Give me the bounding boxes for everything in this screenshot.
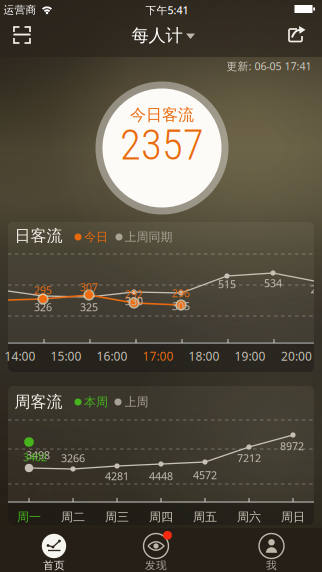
- staticText: 3498: [26, 448, 50, 462]
- staticText: 今日客流: [130, 105, 194, 125]
- staticText: 上周同期: [124, 230, 172, 244]
- staticText: 周客流: [14, 392, 62, 412]
- staticText: 17:00: [142, 348, 173, 364]
- staticText: 周五: [193, 510, 217, 524]
- staticText: 4281: [105, 469, 129, 483]
- staticText: 周一: [17, 510, 41, 524]
- staticText: 15:00: [50, 348, 81, 364]
- staticText: 周日: [281, 510, 305, 524]
- staticText: 4572: [193, 468, 217, 482]
- staticText: 307: [80, 280, 98, 294]
- staticText: 7212: [237, 451, 261, 465]
- staticText: 14:00: [4, 348, 35, 364]
- staticText: 20:00: [281, 348, 312, 364]
- staticText: 上周: [124, 395, 148, 409]
- staticText: 今日: [84, 230, 108, 244]
- button[interactable]: Share: [278, 21, 322, 51]
- staticText: 周四: [149, 510, 173, 524]
- staticText: 日客流: [14, 226, 62, 246]
- staticText: 更新: 06-05 17:41: [226, 59, 311, 73]
- staticText: 325: [80, 300, 98, 314]
- button[interactable]: Scan: [0, 20, 44, 50]
- staticText: 534: [264, 276, 282, 290]
- staticText: 下午5:41: [145, 3, 188, 17]
- button[interactable]: 发现: [107, 528, 214, 572]
- staticText: 3402: [23, 450, 47, 464]
- staticText: 运营商: [3, 3, 36, 16]
- staticText: 515: [218, 277, 236, 291]
- button[interactable]: 我: [214, 528, 321, 572]
- staticText: 292: [125, 287, 143, 301]
- staticText: 326: [34, 300, 52, 314]
- staticText: 8972: [280, 439, 304, 453]
- staticText: 首页: [43, 559, 65, 572]
- staticText: 发现: [145, 559, 167, 572]
- staticText: 253: [310, 282, 322, 296]
- staticText: 4448: [149, 469, 173, 483]
- staticText: 18:00: [188, 348, 219, 364]
- staticText: 周二: [61, 510, 85, 524]
- staticText: 周六: [237, 510, 261, 524]
- staticText: 16:00: [96, 348, 127, 364]
- staticText: 330: [125, 294, 143, 308]
- staticText: 2357: [120, 120, 204, 170]
- staticText: 我: [266, 559, 277, 572]
- staticText: 3266: [61, 451, 85, 465]
- staticText: 305: [172, 299, 190, 313]
- staticText: 19:00: [234, 348, 265, 364]
- button[interactable]: 首页: [0, 528, 107, 572]
- staticText: 296: [172, 286, 190, 300]
- staticText: 每人计: [131, 25, 182, 46]
- staticText: 本周: [84, 395, 108, 409]
- staticText: 295: [34, 283, 52, 297]
- button[interactable]: 每人计: [112, 20, 210, 51]
- staticText: 周三: [105, 510, 129, 524]
